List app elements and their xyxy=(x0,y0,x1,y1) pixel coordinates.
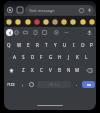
staticText: N xyxy=(67,67,71,73)
staticText: L xyxy=(85,54,88,60)
button[interactable]: Tool 2 xyxy=(22,29,29,36)
button[interactable]: Emoji xyxy=(13,17,22,26)
button[interactable]: Enter xyxy=(82,81,95,88)
staticText: R xyxy=(36,42,39,48)
staticText: O xyxy=(81,42,85,48)
button[interactable]: C xyxy=(37,64,46,76)
button[interactable]: Text message xyxy=(25,5,94,15)
staticText: X xyxy=(31,67,34,73)
staticText: , xyxy=(22,81,24,87)
button[interactable]: R xyxy=(33,39,42,51)
staticText: P xyxy=(90,42,93,48)
staticText: A xyxy=(13,54,16,60)
button[interactable]: Emoji xyxy=(23,17,32,26)
staticText: V xyxy=(49,67,52,73)
staticText: Text message xyxy=(29,8,55,13)
button[interactable]: Gallery xyxy=(15,5,25,15)
staticText: Y xyxy=(54,42,57,48)
staticText: F xyxy=(40,54,43,60)
button[interactable]: S xyxy=(19,51,28,63)
staticText: ?123 xyxy=(7,82,15,87)
button[interactable]: Emoji xyxy=(59,17,68,26)
staticText: G xyxy=(49,54,53,60)
button[interactable]: Emoji keyboard xyxy=(27,78,36,90)
staticText: J xyxy=(68,54,70,60)
button[interactable]: E xyxy=(24,39,33,51)
staticText: B xyxy=(58,67,61,73)
staticText: T xyxy=(45,42,48,48)
button[interactable]: Back xyxy=(6,29,13,36)
staticText: I xyxy=(73,42,75,48)
button[interactable]: B xyxy=(55,64,64,76)
staticText: Q xyxy=(7,42,11,48)
button[interactable]: Camera xyxy=(5,5,15,15)
button[interactable]: Q xyxy=(4,39,14,51)
staticText: M xyxy=(75,67,80,73)
button[interactable]: Shift xyxy=(4,64,19,76)
button[interactable]: Emoji xyxy=(50,17,59,26)
button[interactable]: Tool 4 xyxy=(41,29,48,36)
button[interactable]: A xyxy=(10,51,19,63)
button[interactable]: , xyxy=(18,78,27,90)
staticText: D xyxy=(31,54,35,60)
button[interactable]: Emoji xyxy=(87,17,96,26)
button[interactable]: X xyxy=(28,64,37,76)
button[interactable]: P xyxy=(87,39,96,51)
button[interactable]: Tool 6 xyxy=(63,29,70,36)
button[interactable]: Emoji xyxy=(77,6,85,14)
button[interactable]: ?123 xyxy=(4,78,18,90)
button[interactable]: . xyxy=(72,78,81,90)
button[interactable]: Backspace xyxy=(82,64,96,76)
staticText: H xyxy=(58,54,62,60)
button[interactable]: M xyxy=(73,64,82,76)
button[interactable]: N xyxy=(64,64,73,76)
button[interactable]: K xyxy=(73,51,82,63)
button[interactable]: Y xyxy=(51,39,60,51)
button[interactable]: I xyxy=(69,39,78,51)
button[interactable]: Emoji xyxy=(41,17,50,26)
button[interactable]: G xyxy=(46,51,55,63)
button[interactable]: Tool 1 xyxy=(13,29,20,36)
button[interactable]: Emoji xyxy=(78,17,87,26)
button[interactable]: Emoji xyxy=(4,17,13,26)
staticText: K xyxy=(76,54,79,60)
staticText: S xyxy=(22,54,25,60)
button[interactable]: Emoji xyxy=(32,17,41,26)
button[interactable]: V xyxy=(46,64,55,76)
button[interactable]: H xyxy=(55,51,64,63)
button[interactable]: Z xyxy=(19,64,28,76)
staticText: EN · US xyxy=(49,83,60,87)
staticText: C xyxy=(40,67,43,73)
button[interactable]: J xyxy=(64,51,73,63)
button[interactable]: Voice input xyxy=(85,6,93,14)
button[interactable]: O xyxy=(78,39,87,51)
button[interactable]: Emoji xyxy=(68,17,77,26)
button[interactable]: Space xyxy=(37,81,71,88)
button[interactable]: D xyxy=(28,51,37,63)
button[interactable]: F xyxy=(37,51,46,63)
staticText: Z xyxy=(22,67,25,73)
staticText: U xyxy=(63,42,67,48)
button[interactable]: Voice typing xyxy=(86,29,93,36)
button[interactable]: U xyxy=(60,39,69,51)
button[interactable]: Tool 3 xyxy=(32,29,39,36)
button[interactable]: Tool 5 xyxy=(53,29,60,36)
staticText: E xyxy=(27,42,30,48)
button[interactable]: W xyxy=(14,39,24,51)
staticText: . xyxy=(76,81,78,87)
button[interactable]: L xyxy=(82,51,91,63)
button[interactable]: T xyxy=(42,39,51,51)
staticText: W xyxy=(17,42,22,48)
